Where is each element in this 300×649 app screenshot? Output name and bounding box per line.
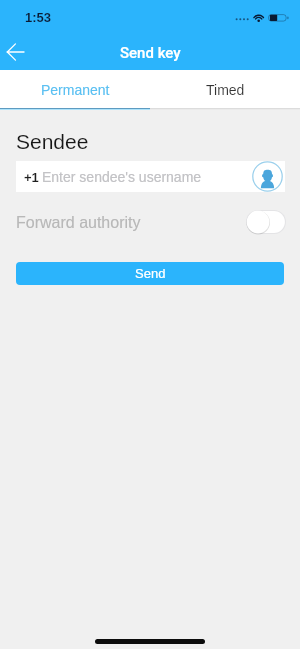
staticText: Send key (120, 44, 181, 62)
staticText: Sendee (16, 130, 89, 153)
staticText: +1 (24, 170, 39, 185)
button[interactable]: Permanent (0, 70, 150, 110)
button[interactable]: Back (0, 33, 36, 71)
staticText: Send (135, 266, 166, 281)
staticText: Forward authority (16, 214, 141, 232)
staticText: 1:53 (25, 10, 52, 25)
staticText: Timed (206, 82, 245, 98)
button[interactable]: Forward authority (0, 205, 300, 241)
button[interactable]: Timed (150, 70, 300, 110)
button[interactable]: Send (16, 262, 284, 285)
staticText: Enter sendee's username (42, 169, 202, 185)
button[interactable]: Forward authority toggle (246, 210, 286, 234)
button[interactable]: Choose contact (251, 161, 283, 192)
staticText: Permanent (41, 82, 110, 98)
